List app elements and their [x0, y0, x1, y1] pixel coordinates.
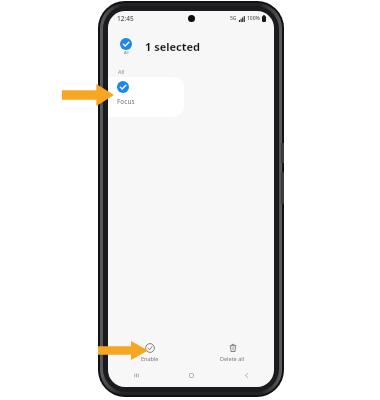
staticText: 1 selected	[145, 39, 201, 54]
staticText: Delete all	[220, 355, 245, 362]
button[interactable]: Recents	[108, 367, 164, 384]
staticText: 12:45	[117, 14, 134, 23]
button[interactable]: Enable	[108, 337, 191, 367]
staticText: 5G	[230, 15, 237, 22]
staticText: All	[118, 68, 125, 75]
staticText: All	[124, 50, 129, 55]
button[interactable]: Focus	[108, 77, 184, 117]
staticText: Focus	[117, 97, 135, 106]
button[interactable]: Home	[164, 367, 219, 384]
button[interactable]: Back	[219, 367, 274, 384]
staticText: 100%	[247, 15, 260, 22]
button[interactable]: Select all	[118, 37, 134, 56]
staticText: Enable	[141, 355, 159, 362]
button[interactable]: Delete all	[191, 337, 274, 367]
